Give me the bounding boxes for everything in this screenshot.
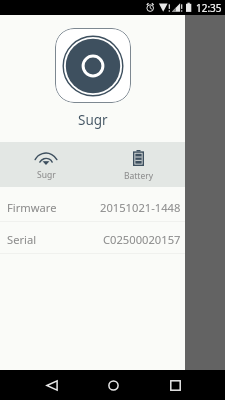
staticText: Battery xyxy=(124,170,154,182)
button[interactable]: Serial xyxy=(0,222,225,253)
button[interactable]: Sugr device xyxy=(55,28,131,103)
button[interactable]: Recent apps xyxy=(144,370,206,400)
staticText: Sugr xyxy=(78,111,108,129)
button[interactable]: Home xyxy=(82,370,144,400)
staticText: 12:35 xyxy=(196,1,222,15)
button[interactable]: Battery xyxy=(92,142,185,187)
staticText: Sugr xyxy=(37,169,56,181)
button[interactable]: Sugr xyxy=(0,142,92,187)
staticText: Firmware xyxy=(7,200,57,215)
staticText: C02500020157 xyxy=(103,232,181,247)
staticText: Serial xyxy=(7,232,37,247)
staticText: 20151021-1448 xyxy=(100,200,181,215)
button[interactable]: Firmware xyxy=(0,187,225,221)
button[interactable]: Back xyxy=(20,370,82,400)
